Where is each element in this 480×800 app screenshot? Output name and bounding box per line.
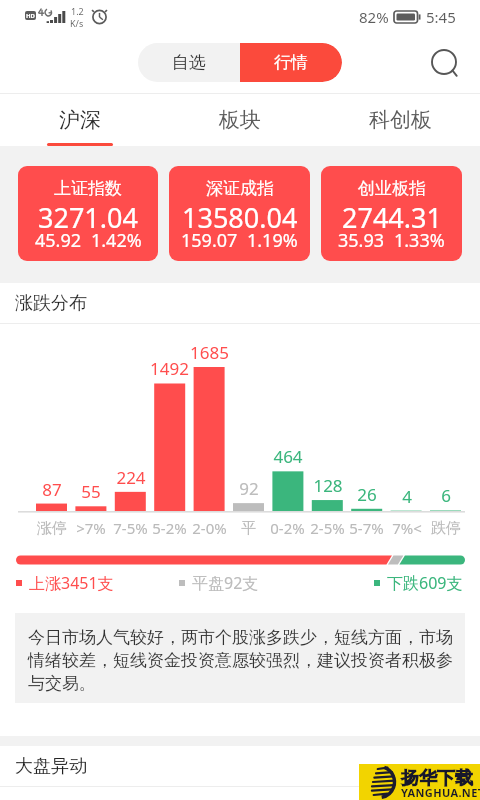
staticText: 7%<	[392, 518, 422, 538]
staticText: 2744.31	[342, 199, 442, 236]
staticText: 7-5%	[113, 518, 148, 538]
staticText: 跌停	[431, 519, 461, 538]
staticText: 1.33%	[394, 228, 445, 253]
staticText: 4	[402, 485, 412, 507]
staticText: 3271.04	[38, 199, 138, 236]
staticText: 下跌609支	[387, 572, 463, 594]
staticText: 92	[239, 477, 259, 499]
button[interactable]: 下跌609支	[374, 571, 463, 595]
staticText: 0-2%	[270, 518, 305, 538]
button[interactable]: Search	[420, 40, 468, 88]
staticText: 5-7%	[349, 518, 384, 538]
button[interactable]: 行情	[240, 43, 342, 82]
staticText: HD	[26, 12, 35, 20]
button[interactable]: 上证指数	[18, 166, 158, 261]
staticText: 深证成指	[206, 178, 274, 199]
staticText: 1.19%	[247, 228, 298, 253]
staticText: 26	[357, 483, 377, 505]
button[interactable]: 自选	[138, 43, 240, 82]
staticText: 1492	[150, 357, 189, 379]
button[interactable]: 沪深	[0, 94, 160, 146]
staticText: 创业板指	[358, 178, 426, 199]
staticText: 科创板	[369, 107, 432, 133]
staticText: 6	[441, 484, 451, 506]
staticText: 上证指数	[54, 178, 122, 199]
staticText: 1.2	[71, 5, 84, 17]
staticText: K/s	[70, 17, 84, 29]
staticText: 自选	[172, 52, 206, 73]
staticText: YANGHUA.NET	[401, 785, 480, 800]
button[interactable]: 上涨3451支	[16, 571, 114, 595]
staticText: 159.07	[181, 228, 238, 253]
button[interactable]: 板块	[160, 94, 320, 146]
staticText: 今日市场人气较好，两市个股涨多跌少，短线方面，市场情绪较差，短线资金投资意愿较强…	[28, 627, 453, 694]
staticText: 87	[42, 478, 62, 500]
staticText: 128	[313, 474, 343, 496]
button[interactable]: 科创板	[320, 94, 480, 146]
staticText: 35.93	[338, 228, 385, 253]
staticText: 55	[81, 480, 101, 502]
staticText: 上涨3451支	[29, 572, 114, 594]
staticText: 涨跌分布	[15, 292, 87, 315]
staticText: 5-2%	[152, 518, 187, 538]
staticText: 平	[241, 519, 256, 538]
staticText: 1.42%	[91, 228, 142, 253]
staticText: 行情	[274, 52, 308, 73]
staticText: 平盘92支	[192, 572, 259, 594]
button[interactable]: 创业板指	[321, 166, 462, 261]
staticText: 2-0%	[192, 518, 227, 538]
staticText: 13580.04	[182, 199, 298, 236]
button[interactable]: 深证成指	[169, 166, 310, 261]
staticText: 45.92	[35, 228, 82, 253]
button[interactable]: 平盘92支	[179, 571, 259, 595]
staticText: >7%	[76, 518, 106, 538]
staticText: 涨停	[37, 519, 67, 538]
staticText: 5:45	[426, 7, 456, 27]
staticText: 2-5%	[310, 518, 345, 538]
staticText: 沪深	[59, 107, 101, 133]
staticText: 1685	[190, 341, 229, 363]
staticText: 板块	[219, 107, 261, 133]
staticText: 82%	[359, 7, 389, 27]
staticText: 大盘异动	[15, 755, 87, 778]
staticText: 464	[273, 445, 303, 467]
staticText: 扬华下载	[401, 767, 473, 790]
staticText: 224	[116, 466, 146, 488]
